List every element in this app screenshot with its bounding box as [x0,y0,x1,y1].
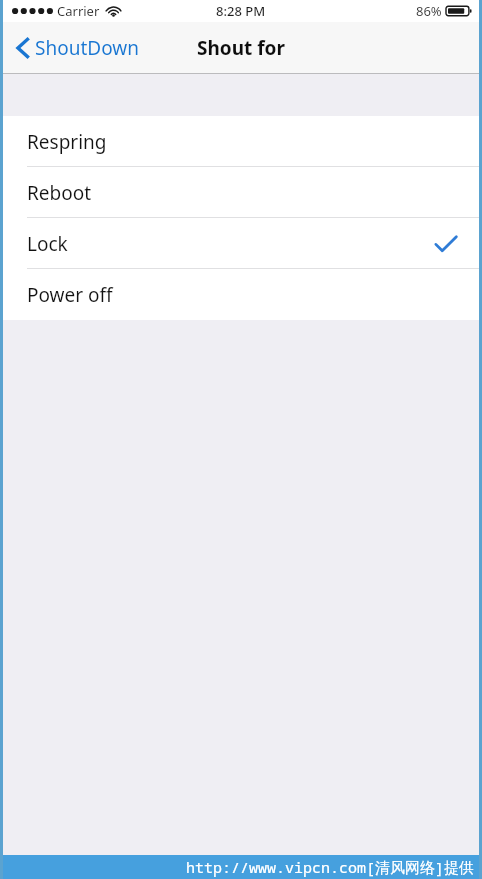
staticText: http://www.vipcn.com[清风网络]提供 [186,857,475,877]
staticText: Power off [27,282,113,308]
staticText: Shout for [197,35,285,61]
button[interactable]: Power off [3,269,479,320]
staticText: ShoutDown [35,35,139,61]
staticText: 8:28 PM [216,2,266,20]
staticText: Reboot [27,180,92,206]
staticText: Respring [27,129,107,155]
staticText: Carrier [57,2,100,20]
staticText: 86% [416,2,442,20]
staticText: Lock [27,231,68,257]
button[interactable]: Reboot [3,167,479,218]
button[interactable]: Respring [3,116,479,167]
button[interactable]: Lock [3,218,479,269]
button[interactable]: ShoutDown [14,29,141,67]
